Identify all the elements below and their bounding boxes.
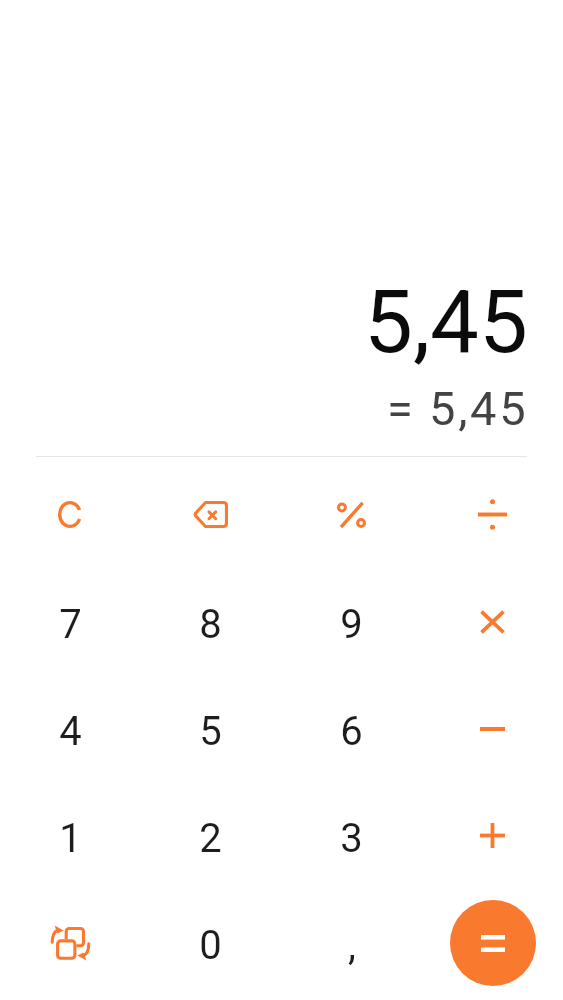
staticText: 0 — [199, 922, 222, 969]
button[interactable]: Add — [422, 782, 563, 889]
staticText: 3 — [340, 815, 363, 862]
staticText: = — [387, 381, 413, 436]
button[interactable]: 0 — [140, 889, 281, 996]
button[interactable]: 2 — [140, 782, 281, 889]
staticText: 5 — [199, 708, 222, 755]
staticText: 4 — [59, 708, 82, 755]
staticText: , — [348, 922, 356, 969]
button[interactable]: Backspace — [140, 461, 281, 568]
staticText: 1 — [59, 815, 82, 862]
button[interactable]: 3 — [281, 782, 422, 889]
button[interactable]: 4 — [0, 675, 140, 782]
staticText: 7 — [59, 601, 82, 648]
button[interactable]: 9 — [281, 568, 422, 675]
button[interactable]: 1 — [0, 782, 140, 889]
button[interactable]: Percent — [281, 461, 422, 568]
button[interactable]: Unit converter — [0, 889, 140, 996]
button[interactable]: Subtract — [422, 675, 563, 782]
button[interactable]: Equals — [450, 900, 536, 986]
staticText: 9 — [340, 601, 363, 648]
staticText: 5,45 — [429, 381, 529, 436]
staticText: 2 — [199, 815, 222, 862]
button[interactable]: 7 — [0, 568, 140, 675]
button[interactable]: Multiply — [422, 568, 563, 675]
button[interactable]: , — [281, 889, 422, 996]
button[interactable]: Divide — [422, 461, 563, 568]
button[interactable]: 6 — [281, 675, 422, 782]
staticText: 8 — [199, 601, 222, 648]
button[interactable]: 5 — [140, 675, 281, 782]
button[interactable]: 8 — [140, 568, 281, 675]
staticText: 5,45 — [364, 271, 528, 373]
button[interactable]: Clear — [0, 461, 140, 568]
staticText: 6 — [340, 708, 363, 755]
